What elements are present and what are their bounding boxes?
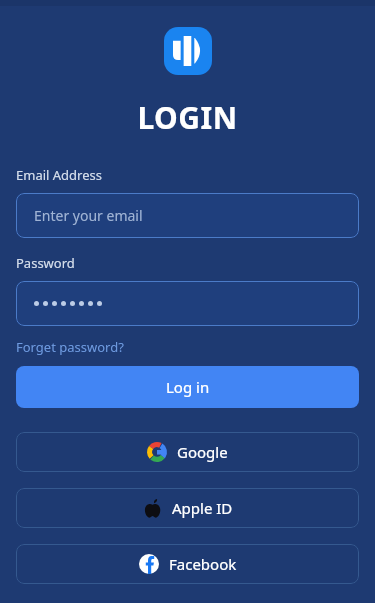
- button[interactable]: Apple ID: [16, 488, 359, 528]
- staticText: Forget password?: [16, 338, 124, 356]
- staticText: LOGIN: [0, 97, 375, 138]
- staticText: Log in: [166, 377, 210, 397]
- other: Facebook: [139, 554, 159, 574]
- button[interactable]: [16, 281, 359, 326]
- staticText: Enter your email: [34, 206, 143, 225]
- button[interactable]: Forget password?: [16, 338, 124, 356]
- staticText: Google: [177, 442, 228, 462]
- staticText: Facebook: [169, 554, 237, 574]
- staticText: Email Address: [16, 166, 102, 184]
- staticText: Apple ID: [172, 498, 233, 518]
- button[interactable]: Enter your email: [16, 193, 359, 238]
- other: Google: [147, 442, 167, 462]
- other: Apple ID: [143, 499, 162, 518]
- button[interactable]: Facebook: [16, 544, 359, 584]
- staticText: Password: [16, 254, 75, 272]
- button[interactable]: Google: [16, 432, 359, 472]
- button[interactable]: Log in: [16, 366, 359, 408]
